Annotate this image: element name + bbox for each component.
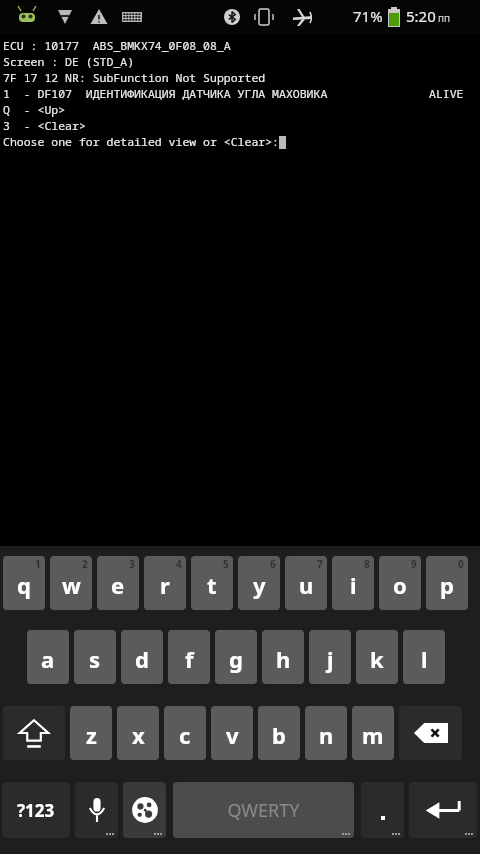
button[interactable]: o xyxy=(379,556,421,610)
staticText: 7 xyxy=(317,557,323,571)
staticText: i xyxy=(350,570,357,600)
staticText: 5:20 xyxy=(406,6,436,26)
staticText: a xyxy=(41,644,55,674)
staticText: c xyxy=(179,720,191,750)
staticText: t xyxy=(207,570,217,600)
staticText: 6 xyxy=(270,557,276,571)
staticText: 71% xyxy=(353,6,383,26)
staticText: 1 - DF107 ИДЕНТИФИКАЦИЯ ДАТЧИКА УГЛА МАХ… xyxy=(3,86,328,102)
staticText: 3 xyxy=(129,557,135,571)
staticText: k xyxy=(370,644,384,674)
staticText: 1 xyxy=(35,557,41,571)
button[interactable]: i xyxy=(332,556,374,610)
staticText: Q - <Up> xyxy=(3,102,66,118)
button[interactable]: d xyxy=(121,630,163,684)
staticText: u xyxy=(299,570,314,600)
button[interactable]: m xyxy=(352,706,394,760)
button[interactable]: b xyxy=(258,706,300,760)
staticText: n xyxy=(319,720,334,750)
staticText: 9 xyxy=(411,557,417,571)
staticText: b xyxy=(272,720,286,750)
button[interactable]: a xyxy=(27,630,69,684)
button[interactable]: Change language xyxy=(123,782,166,838)
button[interactable]: z xyxy=(70,706,112,760)
staticText: ALIVE xyxy=(429,86,464,102)
staticText: p xyxy=(440,570,454,600)
staticText: 5 xyxy=(223,557,229,571)
staticText: 3 - <Clear> xyxy=(3,118,86,134)
button[interactable]: Enter xyxy=(409,782,477,838)
button[interactable]: Shift xyxy=(3,706,65,760)
button[interactable]: Backspace xyxy=(399,706,462,760)
staticText: w xyxy=(62,570,81,600)
staticText: m xyxy=(362,720,384,750)
button[interactable]: v xyxy=(211,706,253,760)
button[interactable]: ?123 xyxy=(2,782,70,838)
button[interactable]: s xyxy=(74,630,116,684)
staticText: l xyxy=(421,644,428,674)
staticText: 4 xyxy=(176,557,182,571)
staticText: j xyxy=(327,644,334,674)
staticText: d xyxy=(135,644,149,674)
button[interactable]: g xyxy=(215,630,257,684)
staticText: ?123 xyxy=(17,799,55,822)
staticText: 2 xyxy=(82,557,88,571)
button[interactable]: t xyxy=(191,556,233,610)
staticText: g xyxy=(229,644,243,674)
staticText: o xyxy=(393,570,407,600)
button[interactable]: y xyxy=(238,556,280,610)
staticText: v xyxy=(226,720,239,750)
staticText: x xyxy=(132,720,145,750)
staticText: y xyxy=(253,570,266,600)
staticText: q xyxy=(17,570,31,600)
button[interactable]: n xyxy=(305,706,347,760)
button[interactable]: Voice input xyxy=(75,782,118,838)
button[interactable]: q xyxy=(3,556,45,610)
staticText: пп xyxy=(438,11,451,25)
staticText: QWERTY xyxy=(227,798,300,823)
staticText: 7F 17 12 NR: SubFunction Not Supported xyxy=(3,70,266,86)
button[interactable]: k xyxy=(356,630,398,684)
button[interactable]: QWERTY xyxy=(173,782,354,838)
staticText: 0 xyxy=(458,557,464,571)
button[interactable]: r xyxy=(144,556,186,610)
staticText: ECU : 10177 ABS_BMKX74_0F08_08_A xyxy=(3,38,231,54)
button[interactable] xyxy=(361,782,404,838)
button[interactable]: c xyxy=(164,706,206,760)
button[interactable]: f xyxy=(168,630,210,684)
staticText: r xyxy=(160,570,170,600)
staticText: h xyxy=(276,644,291,674)
staticText: s xyxy=(89,644,101,674)
button[interactable]: p xyxy=(426,556,468,610)
button[interactable]: h xyxy=(262,630,304,684)
staticText: f xyxy=(185,644,194,674)
button[interactable]: x xyxy=(117,706,159,760)
button[interactable]: j xyxy=(309,630,351,684)
staticText: e xyxy=(111,570,125,600)
staticText: z xyxy=(86,720,97,750)
staticText: 8 xyxy=(364,557,370,571)
button[interactable]: w xyxy=(50,556,92,610)
button[interactable]: u xyxy=(285,556,327,610)
button[interactable]: l xyxy=(403,630,445,684)
staticText: Choose one for detailed view or <Clear>: xyxy=(3,134,279,150)
staticText: Screen : DE (STD_A) xyxy=(3,54,135,70)
button[interactable]: e xyxy=(97,556,139,610)
